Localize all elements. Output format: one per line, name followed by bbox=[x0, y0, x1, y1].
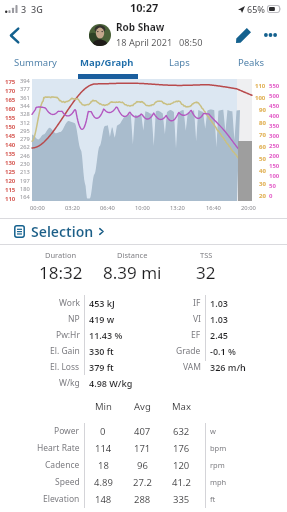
staticText: 288 bbox=[134, 493, 151, 506]
staticText: 08:50 bbox=[179, 36, 203, 49]
staticText: 125 bbox=[5, 168, 16, 176]
button[interactable]: Summary bbox=[0, 51, 71, 73]
button[interactable]: Laps bbox=[143, 51, 215, 73]
staticText: 262 bbox=[20, 143, 30, 151]
staticText: 70 bbox=[259, 131, 266, 139]
staticText: 250 bbox=[269, 142, 280, 150]
staticText: 50 bbox=[269, 182, 276, 190]
staticText: 3 bbox=[21, 3, 27, 15]
staticText: 18 April 2021 bbox=[116, 36, 173, 49]
button[interactable]: Back bbox=[0, 21, 28, 49]
staticText: 377 bbox=[20, 85, 30, 93]
staticText: 115 bbox=[5, 186, 16, 194]
staticText: 379 ft bbox=[89, 361, 114, 373]
staticText: 18 bbox=[98, 459, 109, 472]
staticText: 16:40 bbox=[206, 204, 221, 212]
staticText: 60 bbox=[259, 143, 266, 151]
button[interactable]: More options bbox=[258, 23, 282, 47]
staticText: El. Gain bbox=[50, 345, 80, 357]
staticText: VAM bbox=[183, 361, 201, 373]
staticText: 65% bbox=[247, 3, 265, 15]
staticText: 312 bbox=[20, 119, 30, 127]
staticText: Max bbox=[172, 400, 191, 413]
staticText: Summary bbox=[14, 56, 57, 69]
staticText: 90 bbox=[259, 106, 266, 114]
staticText: 175 bbox=[5, 78, 16, 86]
staticText: 197 bbox=[20, 177, 30, 185]
staticText: Cadence bbox=[45, 459, 80, 471]
staticText: 03:20 bbox=[65, 204, 80, 212]
staticText: bpm bbox=[210, 443, 227, 453]
staticText: w bbox=[210, 426, 216, 436]
staticText: 110 bbox=[5, 195, 16, 203]
staticText: 06:40 bbox=[100, 204, 115, 212]
staticText: Power bbox=[54, 425, 80, 437]
staticText: 453 kJ bbox=[89, 297, 115, 309]
staticText: Speed bbox=[55, 476, 80, 488]
button[interactable]: Selection bbox=[0, 219, 287, 244]
staticText: 0 bbox=[100, 425, 106, 438]
staticText: 171 bbox=[134, 442, 151, 455]
staticText: Avg bbox=[134, 400, 151, 413]
staticText: 246 bbox=[20, 152, 30, 160]
staticText: 30 bbox=[259, 180, 266, 188]
button[interactable]: Map/Graph bbox=[71, 51, 143, 73]
staticText: Duration bbox=[45, 250, 77, 260]
staticText: 180 bbox=[20, 185, 30, 193]
staticText: 328 bbox=[20, 110, 30, 118]
button[interactable]: Peaks bbox=[215, 51, 287, 73]
staticText: 40 bbox=[259, 167, 266, 175]
staticText: 176 bbox=[173, 442, 190, 455]
staticText: 135 bbox=[5, 150, 16, 158]
staticText: 400 bbox=[269, 112, 280, 120]
staticText: 295 bbox=[20, 127, 30, 135]
staticText: 96 bbox=[137, 459, 148, 472]
staticText: 330 ft bbox=[89, 345, 114, 357]
staticText: Peaks bbox=[238, 56, 265, 69]
staticText: -0.1 % bbox=[210, 345, 236, 357]
staticText: Work bbox=[59, 297, 80, 309]
staticText: 200 bbox=[269, 152, 280, 160]
staticText: Laps bbox=[169, 56, 190, 69]
staticText: 18:32 bbox=[39, 261, 83, 284]
button[interactable]: Edit bbox=[231, 23, 255, 47]
staticText: 41.2 bbox=[172, 476, 191, 489]
staticText: Grade bbox=[176, 345, 201, 357]
staticText: 155 bbox=[5, 114, 16, 122]
staticText: Distance bbox=[117, 250, 148, 260]
staticText: 361 bbox=[20, 94, 30, 102]
staticText: 344 bbox=[20, 102, 30, 110]
staticText: Elevation bbox=[43, 493, 80, 505]
staticText: 114 bbox=[95, 442, 112, 455]
staticText: 120 bbox=[173, 459, 190, 472]
staticText: 13:20 bbox=[170, 204, 185, 212]
staticText: 407 bbox=[134, 425, 151, 438]
staticText: 160 bbox=[5, 105, 16, 113]
staticText: 11.43 % bbox=[89, 329, 123, 341]
staticText: 450 bbox=[269, 102, 280, 110]
staticText: rpm bbox=[210, 460, 225, 470]
staticText: 150 bbox=[5, 123, 16, 131]
staticText: 4.98 W/kg bbox=[89, 377, 133, 389]
staticText: NP bbox=[68, 313, 80, 325]
staticText: W/kg bbox=[59, 377, 80, 389]
staticText: 27.2 bbox=[133, 476, 152, 489]
staticText: 279 bbox=[20, 135, 30, 143]
staticText: 130 bbox=[5, 159, 16, 167]
staticText: 165 bbox=[5, 96, 16, 104]
staticText: El. Loss bbox=[50, 361, 80, 373]
staticText: 100 bbox=[269, 172, 280, 180]
staticText: 4.89 bbox=[94, 476, 113, 489]
staticText: 140 bbox=[5, 141, 16, 149]
staticText: 550 bbox=[269, 82, 280, 90]
staticText: 145 bbox=[5, 132, 16, 140]
staticText: VI bbox=[193, 313, 201, 325]
staticText: 164 bbox=[20, 193, 30, 201]
staticText: 80 bbox=[259, 119, 266, 127]
staticText: 148 bbox=[95, 493, 112, 506]
staticText: 10:27 bbox=[130, 0, 159, 15]
staticText: 335 bbox=[173, 493, 190, 506]
staticText: Selection bbox=[31, 222, 94, 241]
staticText: 20 bbox=[259, 192, 266, 200]
staticText: Pw:Hr bbox=[56, 329, 80, 341]
